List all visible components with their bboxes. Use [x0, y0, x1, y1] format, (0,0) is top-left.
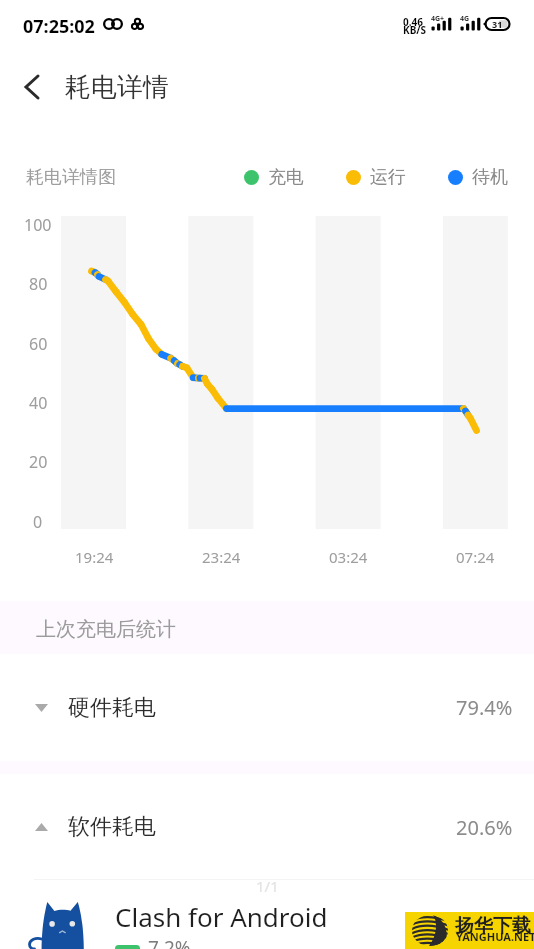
staticText: 79.4% [456, 694, 513, 721]
staticText: 100 [24, 214, 52, 236]
staticText: 07:24 [456, 547, 495, 567]
staticText: 充电 [268, 166, 304, 189]
staticText: 硬件耗电 [68, 694, 156, 722]
staticText: 20.6% [456, 814, 513, 841]
staticText: 19:24 [75, 547, 114, 567]
staticText: 40 [29, 392, 48, 414]
button[interactable]: Back [10, 65, 54, 109]
staticText: 0 [33, 511, 43, 533]
staticText: 1/1 [256, 876, 279, 896]
staticText: 60 [29, 333, 48, 355]
staticText: 80 [29, 273, 48, 295]
staticText: 07:25:02 [23, 14, 95, 39]
staticText: 03:24 [329, 547, 368, 567]
button[interactable]: 硬件耗电 [0, 654, 534, 761]
staticText: 7.2% [148, 935, 191, 949]
staticText: Clash for Android [115, 899, 328, 934]
button[interactable]: 软件耗电 [0, 774, 534, 880]
staticText: 运行 [370, 166, 406, 189]
staticText: KB/S [403, 23, 426, 37]
staticText: 23:24 [202, 547, 241, 567]
staticText: 待机 [472, 166, 508, 189]
staticText: YANGHUA.NET [456, 929, 534, 944]
staticText: 耗电详情 [65, 71, 169, 104]
staticText: 0.46 [403, 15, 423, 29]
staticText: 上次充电后统计 [36, 617, 176, 642]
staticText: 4G+ [431, 14, 445, 24]
staticText: 20 [29, 451, 48, 473]
button[interactable]: Clash for Android [0, 897, 534, 949]
staticText: 扬华下载 [455, 914, 531, 938]
staticText: 31 [492, 18, 503, 30]
staticText: 软件耗电 [68, 813, 156, 841]
staticText: 耗电详情图 [26, 166, 116, 189]
staticText: 4G [460, 14, 470, 24]
